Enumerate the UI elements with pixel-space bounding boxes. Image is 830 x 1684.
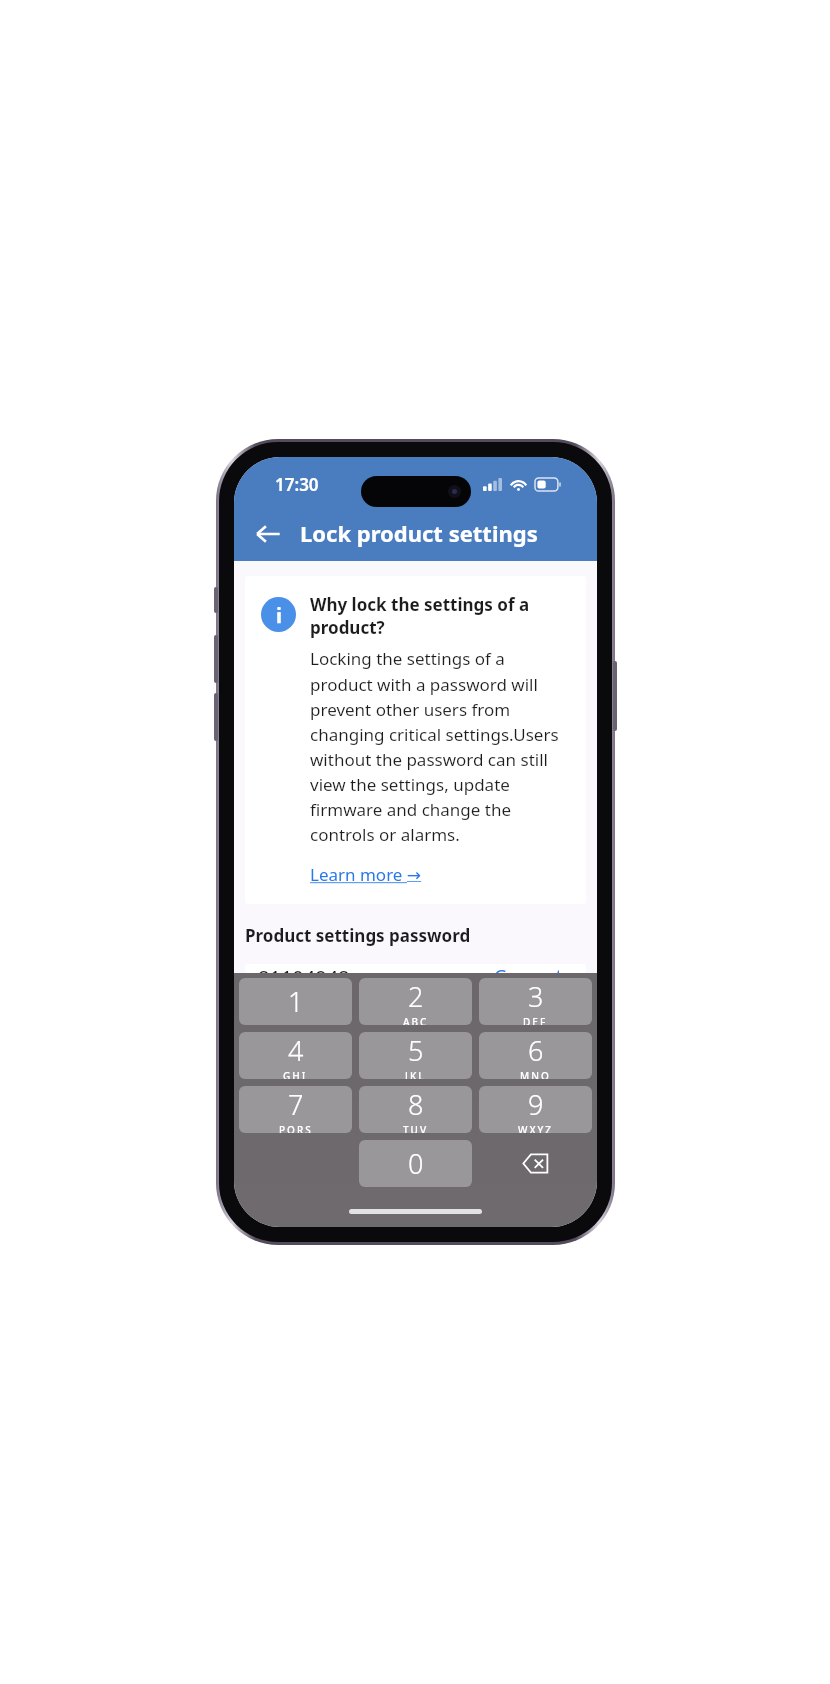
staticText: 1 [288, 983, 304, 1020]
staticText: Lock product settings [300, 518, 538, 548]
staticText: JKL [405, 1069, 426, 1079]
staticText: ABC [403, 1015, 429, 1025]
staticText: 17:30 [275, 473, 319, 496]
button[interactable]: Generate [494, 964, 573, 973]
staticText: Generate [494, 964, 573, 973]
staticText: WXYZ [518, 1123, 554, 1133]
button[interactable]: Learn more → [310, 863, 422, 886]
staticText: 5 [408, 1032, 424, 1069]
staticText: 81104948 [258, 964, 350, 973]
staticText: 0 [408, 1145, 424, 1182]
button[interactable]: 7 [239, 1086, 352, 1133]
staticText: DEF [523, 1015, 548, 1025]
button[interactable]: 81104948 [245, 964, 586, 973]
staticText: Product settings password [245, 924, 471, 947]
button[interactable]: Backspace [479, 1140, 592, 1187]
staticText: GHI [283, 1069, 308, 1079]
button[interactable]: 8 [359, 1086, 472, 1133]
staticText: 4 [288, 1032, 304, 1069]
staticText: PQRS [279, 1123, 313, 1133]
button[interactable]: 0 [359, 1140, 472, 1187]
staticText: 2 [408, 978, 424, 1015]
staticText: 8 [408, 1086, 424, 1123]
button[interactable]: 1 [239, 978, 352, 1025]
staticText: 6 [528, 1032, 544, 1069]
button[interactable]: Back [244, 510, 292, 558]
button[interactable]: 3 [479, 978, 592, 1025]
staticText: MNO [520, 1069, 551, 1079]
staticText: Why lock the settings of a product? [310, 593, 570, 639]
staticText: Learn more → [310, 863, 422, 886]
button[interactable]: 6 [479, 1032, 592, 1079]
staticText: 9 [528, 1086, 544, 1123]
staticText: Locking the settings of a product with a… [310, 647, 570, 846]
button[interactable]: 2 [359, 978, 472, 1025]
staticText: 3 [528, 978, 544, 1015]
button[interactable]: 5 [359, 1032, 472, 1079]
staticText: 7 [288, 1086, 304, 1123]
button[interactable]: 4 [239, 1032, 352, 1079]
button[interactable]: 9 [479, 1086, 592, 1133]
staticText: TUV [403, 1123, 429, 1133]
